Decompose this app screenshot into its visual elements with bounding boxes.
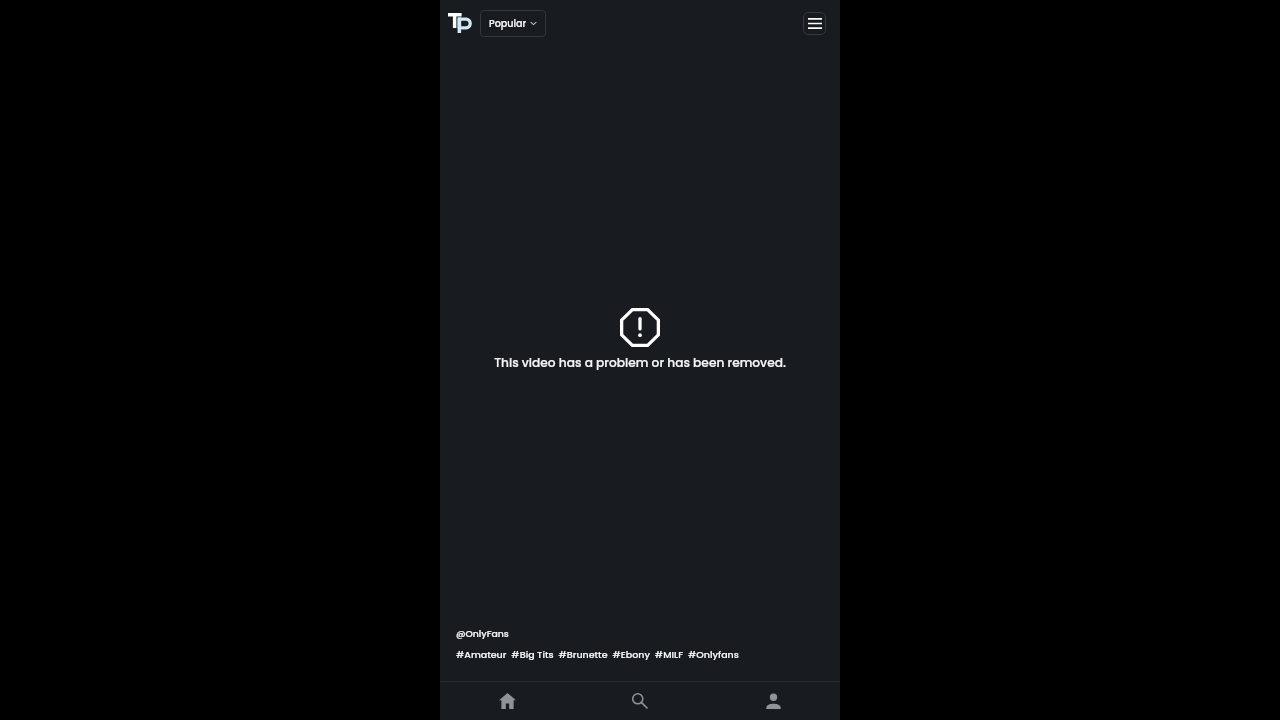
staticText: Popular (489, 17, 527, 30)
button[interactable]: Profile (707, 682, 840, 720)
staticText: This video has a problem or has been rem… (494, 354, 786, 371)
button[interactable]: Search (574, 682, 707, 720)
button[interactable]: ThisVid home (448, 13, 472, 33)
button[interactable]: Menu (803, 12, 826, 35)
staticText: #Amateur #Big Tits #Brunette #Ebony #MIL… (456, 648, 739, 661)
staticText: @OnlyFans (456, 627, 509, 640)
button[interactable]: Popular (480, 10, 546, 37)
button[interactable]: Home (440, 682, 574, 720)
